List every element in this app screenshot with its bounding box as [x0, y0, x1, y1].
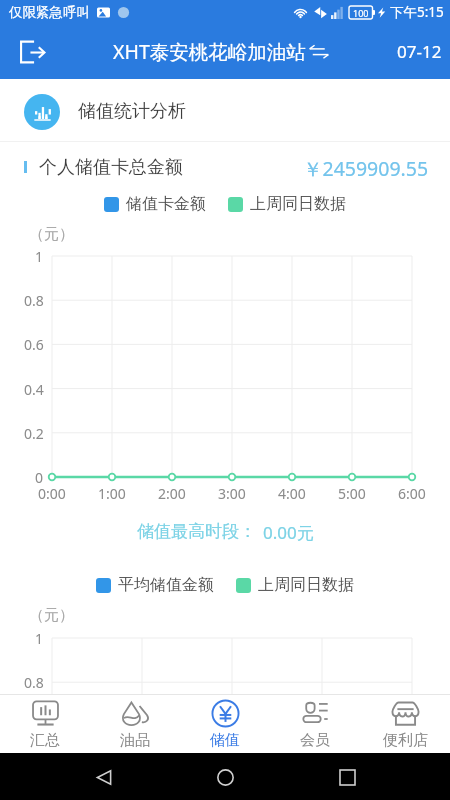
button[interactable]: 便利店: [360, 695, 450, 753]
staticText: 仅限紧急呼叫: [9, 4, 90, 21]
staticText: 0.2: [24, 424, 44, 443]
staticText: XHT泰安桃花峪加油站: [113, 38, 306, 65]
staticText: 1: [35, 247, 44, 266]
staticText: （元）: [29, 606, 74, 625]
button[interactable]: 汇总: [0, 695, 90, 753]
staticText: 储值最高时段：: [137, 521, 256, 541]
staticText: 0.8: [24, 673, 44, 692]
button[interactable]: 油品: [90, 695, 180, 753]
button[interactable]: 储值统计分析: [0, 79, 450, 141]
staticText: 0.6: [24, 335, 44, 354]
staticText: 平均储值金额: [118, 575, 214, 595]
staticText: 0.00元: [263, 521, 314, 541]
staticText: 下午5:15: [390, 3, 444, 21]
staticText: 07-12: [397, 40, 442, 63]
button[interactable]: 会员: [270, 695, 360, 753]
staticText: 0: [35, 468, 44, 487]
staticText: 0.6: [24, 717, 44, 736]
button[interactable]: 切换站点: [306, 39, 332, 65]
staticText: 会员: [300, 731, 330, 750]
staticText: ￥2459909.55: [303, 155, 429, 182]
staticText: 储值统计分析: [78, 100, 186, 123]
staticText: 上周同日数据: [250, 194, 346, 214]
staticText: 0.4: [24, 380, 44, 399]
staticText: 4:00: [278, 484, 306, 503]
staticText: 个人储值卡总金额: [39, 156, 183, 179]
staticText: 5:00: [338, 484, 366, 503]
button[interactable]: 最近应用: [329, 759, 365, 795]
staticText: 储值卡金额: [126, 194, 206, 214]
button[interactable]: 退出登录: [14, 34, 50, 70]
staticText: 便利店: [383, 731, 428, 750]
staticText: 3:00: [218, 484, 246, 503]
staticText: 汇总: [30, 731, 60, 750]
staticText: 6:00: [398, 484, 426, 503]
button[interactable]: 返回: [86, 759, 122, 795]
button[interactable]: 储值: [180, 695, 270, 753]
staticText: 储值: [210, 731, 240, 750]
staticText: 上周同日数据: [258, 575, 354, 595]
button[interactable]: 主屏幕: [207, 759, 243, 795]
staticText: 油品: [120, 731, 150, 750]
staticText: 1:00: [98, 484, 126, 503]
staticText: 2:00: [158, 484, 186, 503]
staticText: 0.8: [24, 291, 44, 310]
staticText: （元）: [29, 225, 74, 244]
staticText: 1: [35, 629, 44, 648]
staticText: 0:00: [38, 484, 66, 503]
staticText: 100: [353, 7, 369, 19]
